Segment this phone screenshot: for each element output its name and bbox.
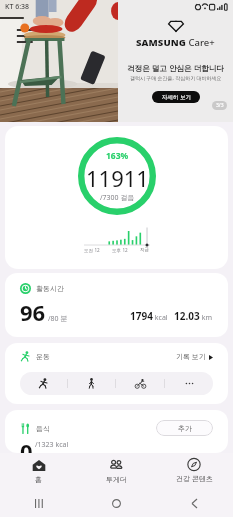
button[interactable]: Back [155,489,233,517]
button[interactable]: 활동시간 [5,273,228,337]
staticText: kcal [153,313,168,323]
staticText: 갤럭시 구매 순간을, 작심하기 대비하세요 [130,75,222,82]
staticText: 1794 [130,309,153,323]
staticText: km [200,313,213,323]
button[interactable]: 투게더 [77,453,155,489]
button[interactable]: 163% [5,126,228,269]
staticText: KT 6:38 [5,2,30,12]
staticText: 기록 보기 [176,352,206,362]
staticText: /1323 kcal [35,440,69,450]
staticText: 지금 [140,247,150,253]
button[interactable]: 추가 [156,420,213,436]
button[interactable]: 자세히 보기 [152,91,200,103]
staticText: 자세히 보기 [162,93,191,101]
staticText: 12.03 [174,309,200,323]
staticText: 3/3 [216,102,224,109]
staticText: /80 분 [48,314,68,324]
staticText: 오전 12 [84,247,100,253]
staticText: 11911 [86,163,149,193]
staticText: 163% [106,150,129,162]
staticText: 홈 [35,475,42,484]
button[interactable]: More exercises [165,372,213,395]
staticText: 96 [20,297,46,327]
button[interactable]: SAMSUNG [0,0,233,122]
staticText: Care+ [186,36,215,49]
staticText: /7300 걸음 [100,193,135,203]
staticText: 투게더 [106,475,127,484]
button[interactable]: Walking [68,372,115,395]
button[interactable]: Running [20,372,67,395]
staticText: 활동시간 [36,284,64,293]
staticText: 오후 12 [112,247,128,253]
button[interactable]: Recent apps [0,489,77,517]
staticText: 음식 [36,424,50,433]
staticText: 걱정은 덜고 안심은 더합니다 [127,63,225,73]
button[interactable]: Home [77,489,155,517]
staticText: 운동 [36,352,50,361]
staticText: 0 [20,436,33,453]
staticText: SAMSUNG [136,36,186,49]
staticText: 건강 콘텐츠 [176,474,213,484]
button[interactable]: Cycling [116,372,164,395]
staticText: 추가 [178,424,192,433]
button[interactable]: 홈 [0,453,77,489]
button[interactable]: 건강 콘텐츠 [155,453,233,489]
button[interactable]: 기록 보기 [176,352,213,362]
